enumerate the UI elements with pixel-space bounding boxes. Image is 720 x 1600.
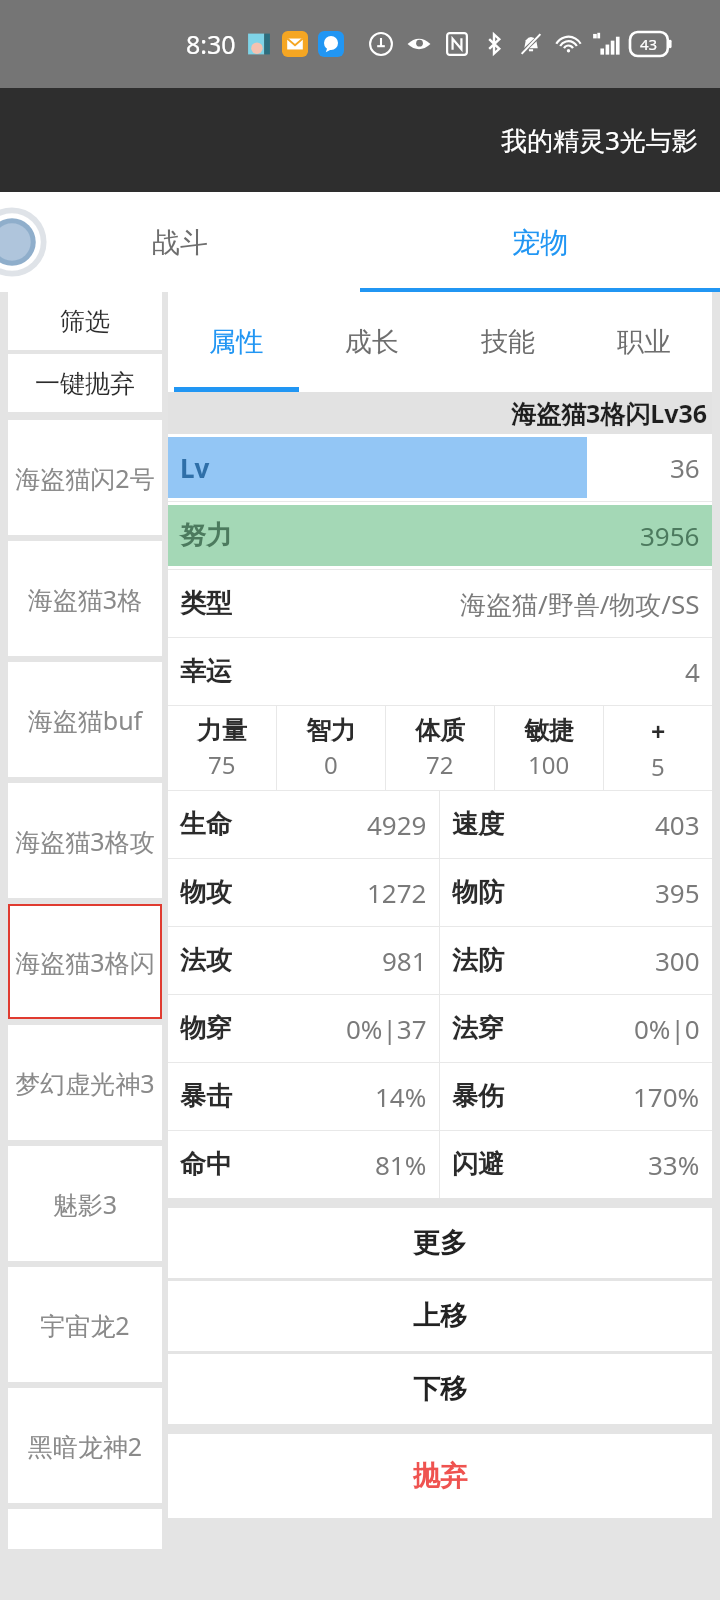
staticText: 法穿 — [452, 1012, 504, 1045]
staticText: 100 — [528, 748, 570, 781]
button[interactable]: 一键抛弃 — [8, 354, 162, 412]
staticText: 黑暗龙神2 — [8, 1429, 162, 1463]
staticText: 72 — [426, 748, 454, 781]
button[interactable]: 海盗猫3格攻 — [8, 783, 162, 898]
staticText: 海盗猫闪2号 — [8, 461, 162, 495]
staticText: 一键抛弃 — [35, 368, 135, 399]
button[interactable]: 海盗猫buf — [8, 662, 162, 777]
staticText: 梦幻虚光神3 — [8, 1066, 162, 1100]
staticText: 类型 — [180, 587, 232, 620]
staticText: 81% — [375, 1147, 427, 1182]
staticText: 成长 — [345, 325, 399, 359]
button[interactable]: 梦幻虚光神3 — [8, 1025, 162, 1140]
button[interactable]: 战斗 — [0, 192, 360, 292]
staticText: 生命 — [180, 808, 232, 841]
staticText: 宠物 — [512, 225, 568, 260]
staticText: Lv — [180, 450, 210, 485]
staticText: 闪避 — [452, 1148, 504, 1181]
staticText: 海盗猫3格 — [8, 582, 162, 616]
staticText: 5 — [651, 750, 665, 783]
staticText: 海盗猫3格闪Lv36 — [511, 396, 708, 430]
staticText: 海盗猫3格攻 — [8, 824, 162, 858]
staticText: 170% — [633, 1079, 700, 1114]
staticText: 法防 — [452, 944, 504, 977]
staticText: 抛弃 — [413, 1459, 467, 1493]
staticText: + — [651, 714, 666, 748]
button[interactable]: 筛选 — [8, 292, 162, 350]
staticText: 43 — [640, 34, 658, 54]
button[interactable]: 宇宙龙2 — [8, 1267, 162, 1382]
staticText: 0%|0 — [634, 1011, 700, 1046]
staticText: 3956 — [640, 518, 700, 553]
staticText: 幸运 — [180, 655, 232, 688]
staticText: 0 — [324, 748, 338, 781]
staticText: 技能 — [481, 325, 535, 359]
staticText: 36 — [670, 450, 700, 485]
staticText: 我的精灵3光与影 — [501, 122, 698, 158]
staticText: 暴击 — [180, 1080, 232, 1113]
staticText: 75 — [208, 748, 236, 781]
button[interactable]: 下移 — [168, 1354, 712, 1424]
staticText: 海盗猫3格闪 — [8, 945, 162, 979]
staticText: 14% — [375, 1079, 427, 1114]
staticText: 物攻 — [180, 876, 232, 909]
staticText: 物防 — [452, 876, 504, 909]
staticText: 体质 — [415, 715, 465, 746]
button[interactable]: 上移 — [168, 1281, 712, 1351]
staticText: 敏捷 — [524, 715, 574, 746]
button[interactable]: 更多 — [168, 1208, 712, 1278]
button[interactable]: 成长 — [304, 292, 440, 392]
staticText: 海盗猫buf — [8, 703, 162, 737]
staticText: 物穿 — [180, 1012, 232, 1045]
staticText: 力量 — [197, 715, 247, 746]
staticText: 海盗猫/野兽/物攻/SS — [460, 586, 700, 622]
staticText: 命中 — [180, 1148, 232, 1181]
button[interactable]: 魅影3 — [8, 1146, 162, 1261]
button[interactable]: 属性 — [168, 292, 304, 392]
staticText: 属性 — [209, 325, 263, 359]
staticText: 4 — [685, 654, 700, 689]
staticText: 宇宙龙2 — [8, 1308, 162, 1342]
staticText: 0%|37 — [346, 1011, 427, 1046]
button[interactable]: 海盗猫3格 — [8, 541, 162, 656]
staticText: 33% — [648, 1147, 700, 1182]
staticText: 8:30 — [186, 27, 236, 61]
staticText: 1272 — [367, 875, 427, 910]
button[interactable]: 技能 — [440, 292, 576, 392]
staticText: 300 — [655, 943, 700, 978]
staticText: 403 — [655, 807, 700, 842]
staticText: 战斗 — [152, 225, 208, 260]
button[interactable]: 海盗猫3格闪 — [8, 904, 162, 1019]
staticText: 981 — [382, 943, 427, 978]
staticText: 魅影3 — [8, 1187, 162, 1221]
button[interactable]: 宠物 — [360, 192, 720, 292]
staticText: 上移 — [413, 1299, 467, 1333]
staticText: 职业 — [617, 325, 671, 359]
button[interactable]: 职业 — [576, 292, 712, 392]
staticText: 智力 — [306, 715, 356, 746]
staticText: 筛选 — [60, 306, 110, 337]
staticText: 395 — [655, 875, 700, 910]
staticText: 暴伤 — [452, 1080, 504, 1113]
staticText: 更多 — [413, 1226, 467, 1260]
button[interactable]: 抛弃 — [168, 1434, 712, 1518]
staticText: 速度 — [452, 808, 504, 841]
button[interactable]: 黑暗龙神2 — [8, 1388, 162, 1503]
button[interactable]: 海盗猫闪2号 — [8, 420, 162, 535]
staticText: 下移 — [413, 1372, 467, 1406]
staticText: 法攻 — [180, 944, 232, 977]
staticText: 4929 — [367, 807, 427, 842]
staticText: 努力 — [180, 519, 232, 552]
